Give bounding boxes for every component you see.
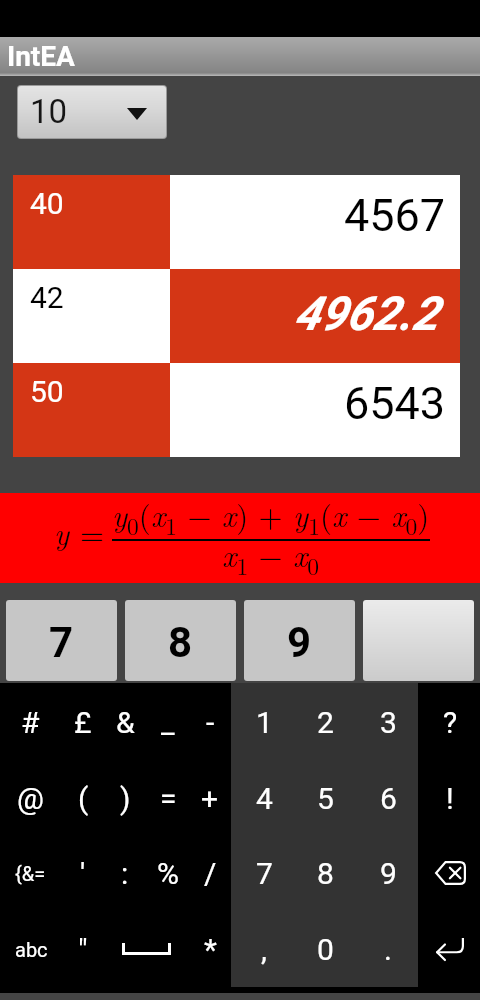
staticText: .: [384, 932, 392, 967]
button[interactable]: (: [60, 762, 106, 834]
staticText: !: [446, 781, 454, 816]
staticText: (: [78, 781, 89, 816]
staticText: 5: [317, 781, 334, 816]
button[interactable]: 40: [13, 175, 170, 269]
staticText: 7: [256, 856, 273, 891]
staticText: 9: [380, 856, 397, 891]
staticText: {&=: [15, 862, 46, 885]
button[interactable]: #: [7, 686, 53, 758]
button[interactable]: 3: [359, 685, 417, 759]
button[interactable]: 5: [296, 761, 354, 835]
button[interactable]: _: [145, 686, 191, 758]
button[interactable]: :: [102, 837, 148, 909]
button[interactable]: 2: [296, 685, 354, 759]
staticText: 9: [287, 618, 312, 667]
staticText: +: [201, 781, 219, 816]
button[interactable]: 9: [244, 600, 355, 681]
staticText: £: [74, 705, 92, 740]
staticText: =: [160, 781, 177, 816]
button[interactable]: @: [7, 762, 53, 834]
staticText: 3: [380, 705, 397, 740]
button[interactable]: abc: [8, 913, 54, 985]
staticText: 6: [380, 781, 397, 816]
staticText: @: [17, 781, 44, 816]
button[interactable]: £: [60, 686, 106, 758]
button[interactable]: 6543: [170, 363, 460, 457]
button[interactable]: Space: [111, 913, 181, 985]
button[interactable]: Enter: [420, 913, 480, 985]
button[interactable]: Backspace: [420, 837, 480, 909]
staticText: y0(x1 − x) + y1(x − x0): [112, 492, 430, 542]
staticText: IntEA: [7, 40, 75, 73]
staticText: ": [78, 932, 88, 967]
button[interactable]: 4: [235, 761, 293, 835]
button[interactable]: +: [187, 762, 233, 834]
button[interactable]: 7: [6, 600, 117, 681]
staticText: 50: [30, 374, 64, 409]
button[interactable]: -: [187, 686, 233, 758]
staticText: &: [116, 705, 135, 740]
button[interactable]: 6: [359, 761, 417, 835]
button[interactable]: &: [102, 686, 148, 758]
staticText: 8: [317, 856, 334, 891]
button[interactable]: /: [187, 837, 233, 909]
button[interactable]: 4567: [170, 175, 460, 269]
button[interactable]: ': [60, 837, 106, 909]
button[interactable]: 8: [125, 600, 236, 681]
button[interactable]: %: [145, 837, 191, 909]
staticText: ): [120, 781, 131, 816]
staticText: -: [206, 705, 215, 740]
button[interactable]: 1: [235, 685, 293, 759]
staticText: *: [204, 932, 217, 967]
button[interactable]: 4962.2: [170, 269, 460, 363]
button[interactable]: {&=: [7, 837, 53, 909]
staticText: 42: [30, 280, 64, 315]
staticText: 10: [30, 92, 68, 131]
staticText: 4: [256, 781, 273, 816]
staticText: #: [21, 705, 40, 740]
staticText: 0: [317, 932, 334, 967]
staticText: y: [54, 510, 70, 554]
staticText: 6543: [344, 377, 446, 430]
staticText: 4567: [344, 189, 446, 242]
staticText: :: [121, 856, 129, 891]
button[interactable]: ,: [235, 912, 293, 986]
staticText: 7: [49, 618, 74, 667]
button[interactable]: *: [187, 913, 233, 985]
staticText: 2: [317, 705, 334, 740]
button[interactable]: 50: [13, 363, 170, 457]
staticText: =: [80, 510, 105, 554]
staticText: 40: [30, 186, 64, 221]
staticText: 1: [256, 705, 273, 740]
staticText: ': [80, 856, 86, 891]
button[interactable]: 8: [296, 836, 354, 910]
button[interactable]: =: [145, 762, 191, 834]
button[interactable]: [363, 600, 474, 681]
button[interactable]: 9: [359, 836, 417, 910]
button[interactable]: 0: [296, 912, 354, 986]
staticText: ?: [443, 705, 458, 740]
staticText: /: [204, 856, 217, 891]
button[interactable]: .: [359, 912, 417, 986]
staticText: _: [161, 705, 175, 740]
button[interactable]: 10: [18, 86, 166, 138]
staticText: 4962.2: [294, 286, 439, 341]
button[interactable]: !: [420, 762, 480, 834]
staticText: %: [157, 856, 179, 891]
staticText: 8: [168, 618, 193, 667]
button[interactable]: ?: [420, 686, 480, 758]
staticText: x1 − x0: [222, 532, 320, 582]
staticText: abc: [15, 938, 48, 961]
button[interactable]: ": [60, 913, 106, 985]
staticText: ,: [261, 932, 267, 967]
button[interactable]: 7: [235, 836, 293, 910]
button[interactable]: ): [102, 762, 148, 834]
button[interactable]: 42: [13, 269, 170, 363]
